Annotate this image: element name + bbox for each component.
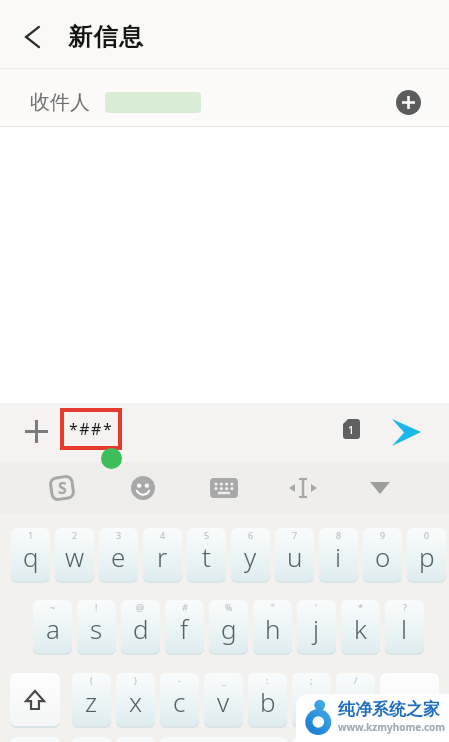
- button[interactable]: -: [160, 673, 199, 726]
- staticText: c: [173, 684, 186, 719]
- button[interactable]: ": [253, 600, 292, 653]
- staticText: w: [65, 539, 85, 574]
- staticText: x: [129, 684, 143, 719]
- button[interactable]: 6: [231, 528, 270, 581]
- staticText: ?: [403, 601, 407, 613]
- staticText: s: [90, 611, 103, 646]
- button[interactable]: [392, 419, 421, 446]
- button[interactable]: ): [116, 673, 155, 726]
- staticText: ~: [50, 601, 56, 613]
- staticText: p: [419, 539, 435, 574]
- staticText: 8: [336, 529, 342, 541]
- button[interactable]: 2: [55, 528, 94, 581]
- button[interactable]: S: [47, 473, 77, 503]
- staticText: 纯净系统之家: [338, 699, 440, 720]
- button[interactable]: 8: [319, 528, 358, 581]
- staticText: ': [315, 601, 318, 613]
- staticText: -: [178, 674, 181, 686]
- staticText: i: [335, 539, 342, 574]
- staticText: n: [304, 684, 320, 719]
- staticText: 1: [28, 529, 34, 541]
- staticText: o: [375, 539, 391, 574]
- button[interactable]: (: [72, 673, 111, 726]
- staticText: @: [136, 601, 145, 613]
- staticText: 4: [160, 529, 166, 541]
- button[interactable]: #: [165, 600, 204, 653]
- button[interactable]: ': [297, 600, 336, 653]
- button[interactable]: [370, 482, 390, 494]
- staticText: g: [221, 611, 237, 646]
- staticText: r: [157, 539, 168, 574]
- button[interactable]: 收件人: [0, 69, 449, 127]
- staticText: k: [354, 611, 367, 646]
- staticText: 0: [424, 529, 430, 541]
- staticText: #: [182, 601, 188, 613]
- button[interactable]: [289, 477, 317, 499]
- staticText: h: [265, 611, 281, 646]
- staticText: 2: [72, 529, 78, 541]
- staticText: u: [287, 539, 303, 574]
- staticText: :: [266, 674, 269, 686]
- staticText: _: [222, 674, 226, 686]
- staticText: ;: [310, 674, 313, 686]
- button[interactable]: *: [341, 600, 380, 653]
- staticText: j: [313, 611, 320, 646]
- staticText: !: [95, 601, 98, 613]
- button[interactable]: *##*: [60, 408, 122, 450]
- button[interactable]: 9: [363, 528, 402, 581]
- button[interactable]: [10, 673, 60, 726]
- staticText: S: [58, 477, 67, 499]
- button[interactable]: 1: [11, 528, 50, 581]
- button[interactable]: [131, 476, 155, 500]
- staticText: *##*: [69, 418, 114, 440]
- staticText: e: [111, 539, 126, 574]
- staticText: *: [358, 601, 363, 613]
- button[interactable]: /: [336, 673, 375, 726]
- button[interactable]: @: [121, 600, 160, 653]
- staticText: www.kzmyhome.com: [338, 720, 446, 734]
- button[interactable]: 4: [143, 528, 182, 581]
- staticText: q: [23, 539, 39, 574]
- staticText: f: [180, 611, 189, 646]
- staticText: t: [202, 539, 211, 574]
- staticText: /: [354, 674, 358, 686]
- button[interactable]: [25, 420, 48, 443]
- staticText: 9: [380, 529, 386, 541]
- button[interactable]: 7: [275, 528, 314, 581]
- staticText: 3: [116, 529, 122, 541]
- staticText: 5: [204, 529, 210, 541]
- button[interactable]: ;: [292, 673, 331, 726]
- staticText: 6: [248, 529, 254, 541]
- button[interactable]: [210, 478, 238, 498]
- button[interactable]: ?: [385, 600, 424, 653]
- staticText: 7: [292, 529, 298, 541]
- button[interactable]: ~: [33, 600, 72, 653]
- staticText: l: [401, 611, 408, 646]
- button[interactable]: [24, 26, 41, 48]
- staticText: 新信息: [68, 22, 145, 52]
- staticText: z: [85, 684, 98, 719]
- button[interactable]: 3: [99, 528, 138, 581]
- staticText: ": [271, 601, 275, 613]
- button[interactable]: 5: [187, 528, 226, 581]
- staticText: b: [260, 684, 276, 719]
- staticText: a: [46, 611, 60, 646]
- staticText: y: [244, 539, 257, 574]
- staticText: (: [90, 674, 93, 686]
- button[interactable]: _: [204, 673, 243, 726]
- staticText: 收件人: [30, 90, 90, 115]
- staticText: m: [344, 684, 368, 719]
- button[interactable]: [396, 90, 421, 115]
- staticText: v: [217, 684, 230, 719]
- staticText: %: [225, 601, 233, 613]
- button[interactable]: %: [209, 600, 248, 653]
- button[interactable]: :: [248, 673, 287, 726]
- staticText: d: [133, 611, 149, 646]
- button[interactable]: [380, 673, 439, 726]
- button[interactable]: !: [77, 600, 116, 653]
- button[interactable]: 0: [407, 528, 446, 581]
- staticText: 1: [348, 422, 355, 437]
- staticText: ): [134, 674, 137, 686]
